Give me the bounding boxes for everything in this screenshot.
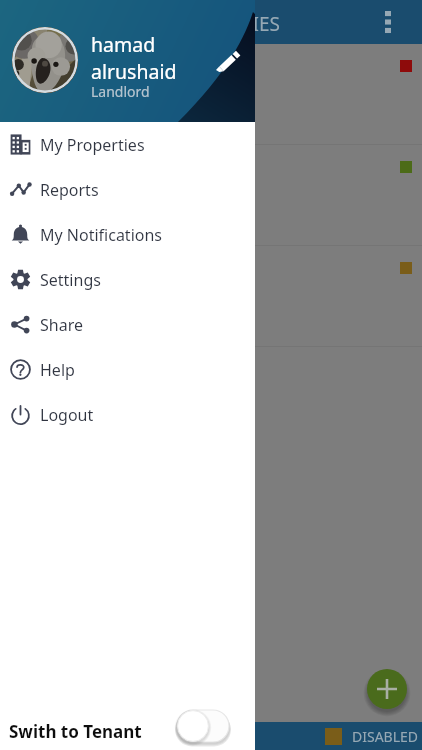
button[interactable] <box>0 145 422 246</box>
button[interactable]: More options <box>374 8 402 36</box>
staticText: Landlord <box>91 82 150 101</box>
staticText: Logout <box>40 404 94 426</box>
staticText: My Properties <box>40 134 145 156</box>
staticText: MY PROPERTIES <box>137 11 280 37</box>
button[interactable]: Swith to Tenant <box>0 696 255 750</box>
staticText: Reports <box>40 179 99 201</box>
button[interactable]: Logout <box>0 392 255 437</box>
button[interactable]: Help <box>0 347 255 392</box>
staticText: Swith to Tenant <box>9 720 142 743</box>
button[interactable]: Edit profile <box>214 49 242 77</box>
staticText: Help <box>40 359 75 381</box>
button[interactable] <box>0 246 422 347</box>
button[interactable] <box>0 44 422 145</box>
staticText: hamad <box>91 31 156 58</box>
staticText: Share <box>40 314 83 336</box>
button[interactable]: Share <box>0 302 255 347</box>
button[interactable]: Add property <box>367 669 407 709</box>
staticText: Settings <box>40 269 101 291</box>
staticText: DISABLED <box>352 727 419 746</box>
button[interactable]: Settings <box>0 257 255 302</box>
staticText: My Notifications <box>40 224 163 246</box>
staticText: alrushaid <box>91 58 177 85</box>
button[interactable]: Reports <box>0 167 255 212</box>
button[interactable]: My Properties <box>0 122 255 167</box>
button[interactable]: My Notifications <box>0 212 255 257</box>
